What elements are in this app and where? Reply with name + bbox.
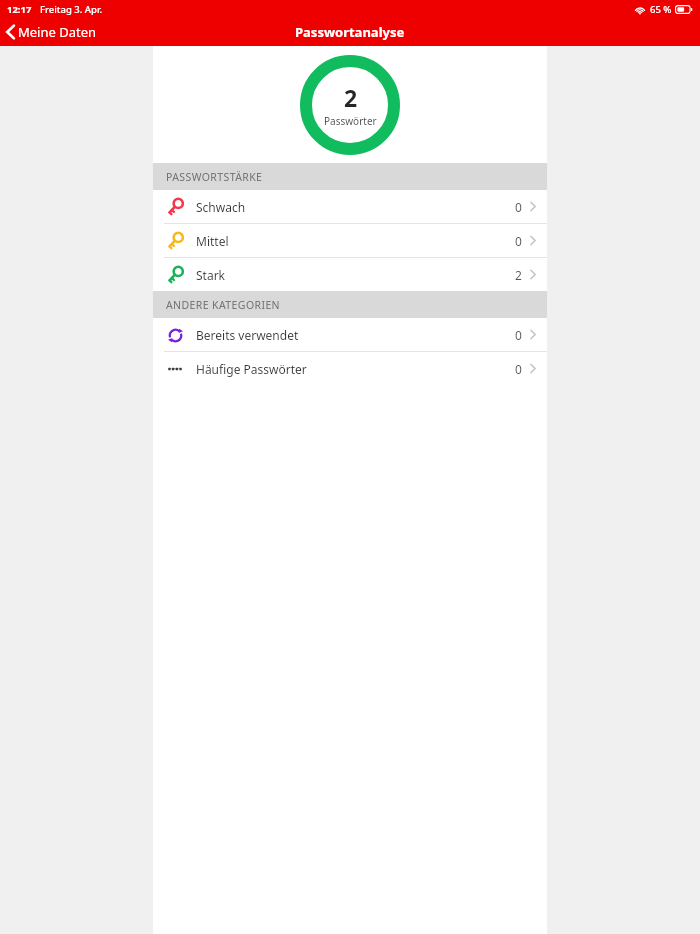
staticText: Meine Daten — [18, 23, 97, 41]
button[interactable]: Meine Daten — [0, 20, 107, 44]
button[interactable]: Bereits verwendet — [153, 318, 547, 351]
staticText: 0 — [515, 233, 522, 249]
staticText: Passwortanalyse — [295, 23, 405, 41]
staticText: Passwörter — [324, 114, 377, 128]
staticText: 12:17 — [7, 3, 32, 16]
staticText: Freitag 3. Apr. — [40, 3, 102, 16]
staticText: Häufige Passwörter — [196, 361, 307, 377]
staticText: 0 — [515, 199, 522, 215]
staticText: Schwach — [196, 199, 246, 215]
staticText: Stark — [196, 267, 226, 283]
button[interactable]: Mittel — [153, 224, 547, 257]
staticText: PASSWORTSTÄRKE — [166, 170, 263, 184]
staticText: Mittel — [196, 233, 229, 249]
staticText: Bereits verwendet — [196, 327, 299, 343]
button[interactable]: Schwach — [153, 190, 547, 223]
staticText: 65 % — [650, 3, 672, 16]
button[interactable]: Stark — [153, 258, 547, 291]
staticText: 2 — [344, 82, 358, 113]
staticText: 0 — [515, 327, 522, 343]
staticText: ANDERE KATEGORIEN — [166, 298, 280, 312]
staticText: 0 — [515, 361, 522, 377]
staticText: 2 — [515, 267, 522, 283]
button[interactable]: Häufige Passwörter — [153, 352, 547, 385]
